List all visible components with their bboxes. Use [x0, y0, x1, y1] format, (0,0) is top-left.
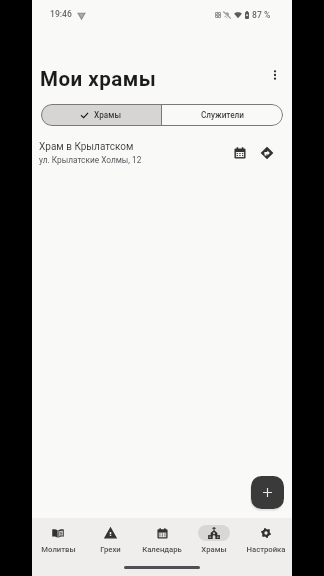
button[interactable]: Directions	[256, 142, 278, 164]
button[interactable]: Schedule	[229, 142, 251, 164]
staticText: Грехи	[100, 545, 121, 554]
staticText: Молитвы	[41, 545, 76, 554]
button[interactable]: Храм в Крылатском	[32, 136, 292, 170]
staticText: Служители	[201, 110, 244, 120]
button[interactable]: Календарь	[136, 518, 188, 560]
staticText: Календарь	[142, 545, 182, 554]
button[interactable]: Грехи	[84, 518, 136, 560]
button[interactable]: More options	[264, 64, 286, 86]
staticText: Настройка	[246, 545, 286, 554]
button[interactable]: Храмы	[41, 104, 161, 126]
button[interactable]: Молитвы	[32, 518, 84, 560]
button[interactable]: Add	[251, 476, 284, 509]
staticText: Мои храмы	[40, 67, 157, 91]
button[interactable]: Настройка	[240, 518, 292, 560]
staticText: ул. Крылатские Холмы, 12	[39, 155, 142, 165]
staticText: 87 %	[252, 10, 271, 20]
staticText: Храмы	[94, 110, 121, 120]
staticText: Храмы	[201, 545, 227, 554]
button[interactable]: Храмы	[188, 518, 240, 560]
staticText: 19:46	[50, 9, 72, 19]
button[interactable]: Служители	[162, 104, 283, 126]
staticText: Храм в Крылатском	[39, 141, 134, 153]
